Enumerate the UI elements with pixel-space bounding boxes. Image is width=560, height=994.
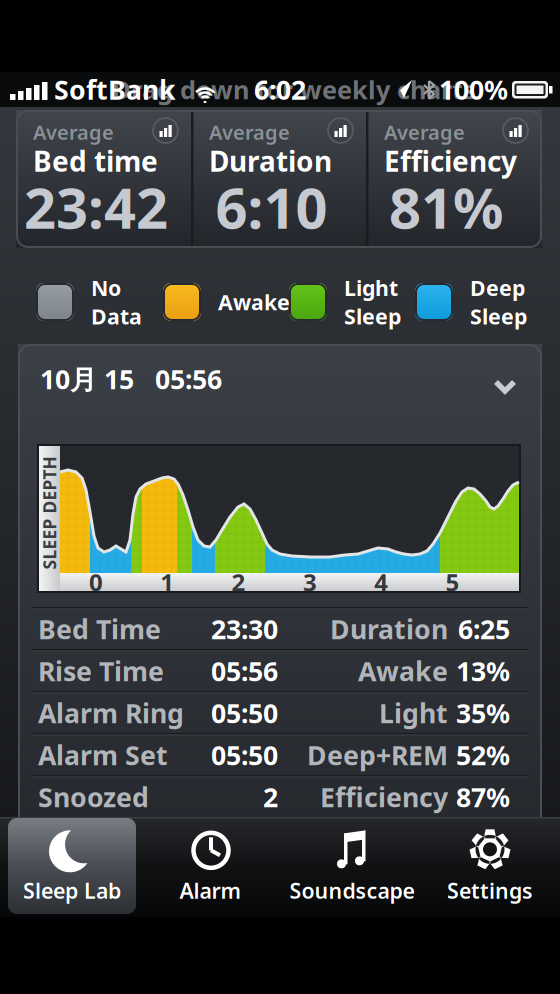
staticText: Efficiency <box>320 779 448 815</box>
staticText: 23:42 <box>24 170 168 244</box>
staticText: 05:50 <box>211 695 278 731</box>
button[interactable]: Weekly chart <box>327 117 354 144</box>
button[interactable]: Weekly chart <box>502 117 529 144</box>
staticText: Duration <box>330 611 448 647</box>
staticText: 10月 15 05:56 <box>40 361 222 397</box>
staticText: 5 <box>445 566 459 598</box>
staticText: No Data <box>91 274 142 330</box>
staticText: Alarm Ring <box>38 695 184 731</box>
staticText: Bed time <box>33 142 158 180</box>
staticText: 23:30 <box>211 611 278 647</box>
staticText: 1 <box>160 566 174 598</box>
button[interactable]: Toggle day details <box>18 344 542 420</box>
button[interactable]: Alarm <box>135 818 285 914</box>
staticText: 05:50 <box>211 737 278 773</box>
button[interactable]: Sleep Lab <box>8 818 136 914</box>
staticText: SoftBank <box>54 72 176 107</box>
staticText: 81% <box>389 170 504 244</box>
staticText: Soundscape <box>289 876 414 905</box>
button[interactable]: Weekly chart <box>152 117 179 144</box>
staticText: 4 <box>374 566 388 598</box>
staticText: 13% <box>456 653 510 689</box>
staticText: Alarm <box>179 876 240 905</box>
staticText: Light <box>379 695 448 731</box>
staticText: Average <box>209 119 290 145</box>
button[interactable]: Soundscape <box>272 818 432 914</box>
staticText: Alarm Set <box>38 737 168 773</box>
button[interactable]: Settings <box>415 818 560 914</box>
staticText: Average <box>33 119 114 145</box>
staticText: Bed Time <box>38 611 161 647</box>
staticText: Rise Time <box>38 653 164 689</box>
staticText: Deep+REM <box>307 737 448 773</box>
staticText: 6:02 <box>254 72 306 107</box>
staticText: 05:56 <box>211 653 278 689</box>
staticText: 52% <box>456 737 510 773</box>
staticText: Awake <box>358 653 448 689</box>
staticText: 6:25 <box>458 611 510 647</box>
staticText: 0 <box>89 566 103 598</box>
staticText: 2 <box>232 566 246 598</box>
staticText: 100% <box>439 72 508 107</box>
staticText: 6:10 <box>215 170 327 244</box>
staticText: 87% <box>456 779 510 815</box>
staticText: Average <box>384 119 465 145</box>
staticText: Efficiency <box>384 142 517 180</box>
staticText: Deep Sleep <box>470 274 527 330</box>
staticText: Drag down for weekly charts <box>112 73 476 106</box>
staticText: 3 <box>303 566 317 598</box>
staticText: Snoozed <box>38 779 149 815</box>
staticText: Settings <box>447 876 533 905</box>
staticText: SLEEP DEPTH <box>0 501 106 524</box>
staticText: Sleep Lab <box>23 876 121 905</box>
staticText: Awake <box>218 288 290 316</box>
staticText: 35% <box>456 695 510 731</box>
staticText: Light Sleep <box>344 274 401 330</box>
staticText: 2 <box>263 779 278 815</box>
staticText: Duration <box>209 142 332 180</box>
